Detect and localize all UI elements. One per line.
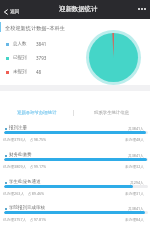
staticText: 共3841人 (128, 206, 144, 211)
staticText: 返回 (10, 9, 20, 15)
staticText: 未办理48人 (125, 137, 144, 142)
button[interactable]: 学生处绿色通道 (0, 176, 150, 202)
staticText: 3793 (36, 55, 47, 61)
staticText: 总人数 (13, 41, 27, 47)
staticText: 迎新数据统计 (59, 5, 98, 13)
staticText: 已办理3809人 (3, 164, 27, 169)
button[interactable]: 报到注册 (0, 122, 150, 148)
staticText: 占97.81% (30, 217, 47, 222)
staticText: 48 (36, 69, 42, 75)
staticText: 报到注册 (9, 125, 27, 131)
staticText: 占98.75% (30, 137, 47, 142)
staticText: 已办理3793人 (3, 137, 27, 142)
staticText: 占89.46% (28, 191, 45, 196)
staticText: 学院报到完成审核 (9, 205, 45, 211)
button[interactable]: 财务处缴费 (0, 149, 150, 175)
button[interactable]: 院系学生统计信息 (73, 105, 150, 121)
staticText: 占99.17% (30, 164, 47, 169)
button[interactable]: 返回 (0, 7, 24, 17)
staticText: 已办理263人 (3, 191, 25, 196)
staticText: 已办理3757人 (3, 217, 27, 222)
staticText: 未办理31人 (125, 191, 144, 196)
staticText: 共3841人 (128, 153, 144, 158)
staticText: 共294人 (130, 180, 144, 185)
staticText: 未报到 (13, 69, 27, 75)
button[interactable]: 学院报到完成审核 (0, 202, 150, 228)
staticText: 迎新各环节办理统计 (17, 110, 57, 116)
staticText: 3841 (36, 41, 47, 47)
staticText: 财务处缴费 (9, 152, 32, 158)
staticText: 共3841人 (128, 126, 144, 131)
staticText: 未办理32人 (125, 164, 144, 169)
staticText: 全校迎新统计数据~本科生 (5, 24, 66, 31)
button[interactable]: More options (136, 6, 148, 12)
staticText: 未办理84人 (125, 217, 144, 222)
staticText: 已报到 (13, 55, 27, 61)
button[interactable]: 迎新各环节办理统计 (0, 105, 73, 121)
staticText: 学生处绿色通道 (9, 179, 41, 185)
staticText: 院系学生统计信息 (94, 110, 130, 116)
